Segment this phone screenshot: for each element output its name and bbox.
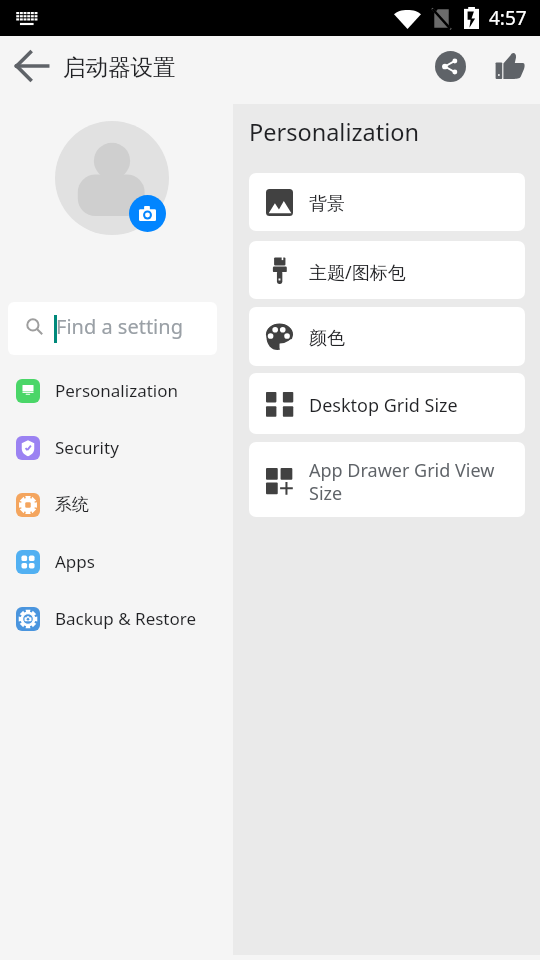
staticText: Personalization	[55, 379, 178, 402]
staticText: App Drawer Grid View Size	[309, 458, 513, 505]
staticText: 4:57	[489, 5, 527, 31]
staticText: 颜色	[309, 327, 345, 350]
button[interactable]: Apps	[0, 533, 233, 590]
staticText: Desktop Grid Size	[309, 393, 458, 418]
staticText: Apps	[55, 550, 95, 573]
staticText: Backup & Restore	[55, 607, 197, 630]
button[interactable]: Change photo	[129, 195, 166, 232]
staticText: Personalization	[249, 116, 419, 148]
staticText: Security	[55, 436, 119, 459]
button[interactable]: 背景	[249, 173, 525, 231]
staticText: 系统	[55, 494, 89, 515]
button[interactable]: Personalization	[0, 362, 233, 419]
button[interactable]: Share	[430, 46, 470, 86]
staticText: 主题/图标包	[309, 260, 406, 285]
staticText: 背景	[309, 193, 345, 216]
button[interactable]: Security	[0, 419, 233, 476]
button[interactable]: Like	[490, 46, 530, 86]
button[interactable]: Find a setting	[8, 302, 217, 355]
staticText: Find a setting	[56, 313, 183, 340]
button[interactable]: App Drawer Grid View Size	[249, 442, 525, 517]
button[interactable]: 系统	[0, 476, 233, 533]
staticText: 启动器设置	[63, 53, 176, 81]
button[interactable]: Back	[4, 38, 60, 94]
button[interactable]: Backup & Restore	[0, 590, 233, 647]
button[interactable]: 颜色	[249, 307, 525, 366]
button[interactable]: Desktop Grid Size	[249, 373, 525, 434]
button[interactable]: 主题/图标包	[249, 241, 525, 299]
